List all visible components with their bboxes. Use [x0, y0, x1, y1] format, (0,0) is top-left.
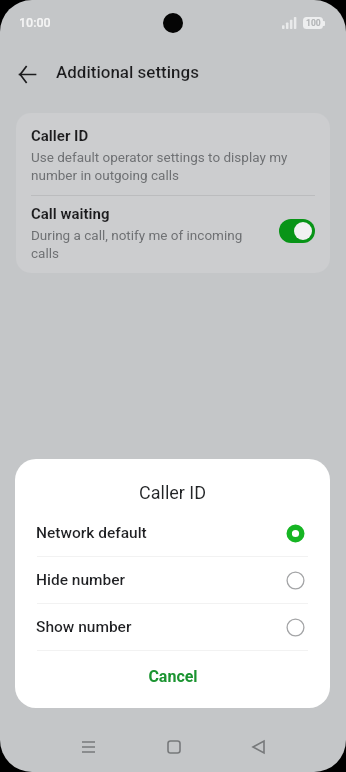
button[interactable]: Back — [7, 52, 47, 92]
button[interactable]: Call waiting — [16, 196, 330, 273]
button[interactable]: Cancel — [15, 651, 330, 708]
button[interactable]: Caller ID — [16, 113, 330, 195]
staticText: Cancel — [148, 667, 198, 686]
button[interactable]: Recent apps — [66, 725, 110, 769]
staticText: Call waiting — [31, 205, 110, 223]
staticText: Additional settings — [56, 62, 199, 82]
button[interactable]: Network default — [15, 510, 330, 556]
staticText: 100 — [306, 18, 321, 28]
button[interactable]: Hide number — [15, 557, 330, 603]
staticText: Caller ID — [139, 482, 207, 503]
staticText: During a call, notify me of incoming cal… — [31, 227, 267, 261]
button[interactable]: Back — [236, 725, 280, 769]
staticText: Hide number — [36, 571, 286, 589]
button[interactable]: Home — [152, 725, 196, 769]
staticText: Caller ID — [31, 127, 89, 145]
staticText: Network default — [36, 524, 286, 542]
button[interactable]: Call waiting on — [279, 219, 315, 243]
staticText: Show number — [36, 618, 286, 636]
button[interactable]: Show number — [15, 604, 330, 650]
staticText: Use default operator settings to display… — [31, 149, 315, 183]
staticText: 10:00 — [19, 15, 51, 30]
